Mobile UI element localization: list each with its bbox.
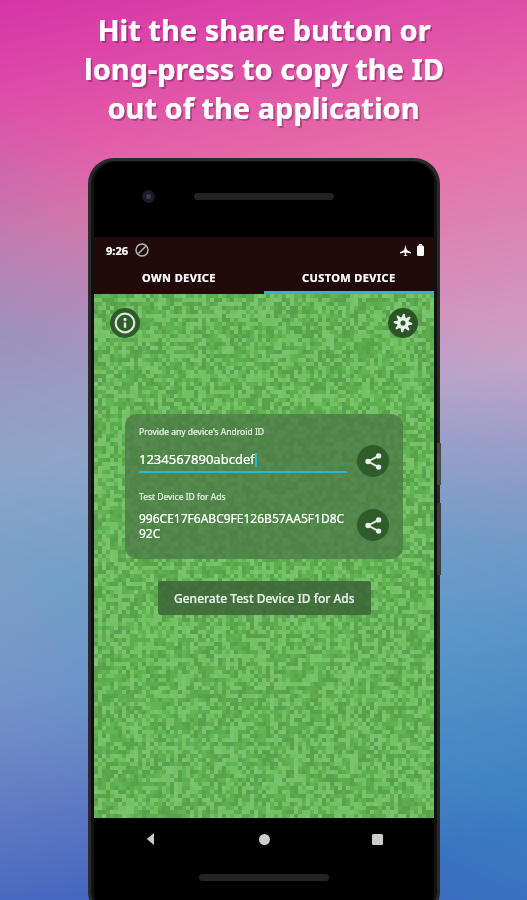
button[interactable]: Recents bbox=[321, 818, 434, 860]
staticText: OWN DEVICE bbox=[142, 270, 216, 285]
button[interactable]: CUSTOM DEVICE bbox=[264, 263, 434, 291]
button[interactable]: Share bbox=[357, 445, 389, 477]
staticText: Provide any device's Android ID bbox=[139, 426, 264, 438]
staticText: Hit the share button or bbox=[97, 10, 431, 49]
staticText: 1234567890abcdef bbox=[139, 450, 255, 468]
button[interactable]: Share bbox=[357, 509, 389, 541]
staticText: long-press to copy the ID bbox=[86, 51, 446, 90]
button[interactable]: Home bbox=[208, 818, 321, 860]
button[interactable]: Generate Test Device ID for Ads bbox=[158, 581, 371, 615]
button[interactable]: Info bbox=[108, 306, 142, 340]
button[interactable]: Settings bbox=[386, 306, 420, 340]
staticText: 996CE17F6ABC9FE126B57AA5F1D8C92C bbox=[139, 510, 349, 541]
staticText: out of the application bbox=[109, 90, 422, 129]
staticText: long-press to copy the ID bbox=[84, 49, 444, 88]
staticText: Hit the share button or bbox=[99, 12, 433, 51]
staticText: Test Device ID for Ads bbox=[139, 491, 226, 503]
staticText: out of the application bbox=[107, 88, 420, 127]
button[interactable]: Back bbox=[94, 818, 208, 860]
staticText: CUSTOM DEVICE bbox=[302, 270, 396, 285]
staticText: 9:26 bbox=[106, 243, 128, 258]
staticText: Generate Test Device ID for Ads bbox=[174, 590, 355, 606]
button[interactable]: OWN DEVICE bbox=[94, 263, 264, 291]
